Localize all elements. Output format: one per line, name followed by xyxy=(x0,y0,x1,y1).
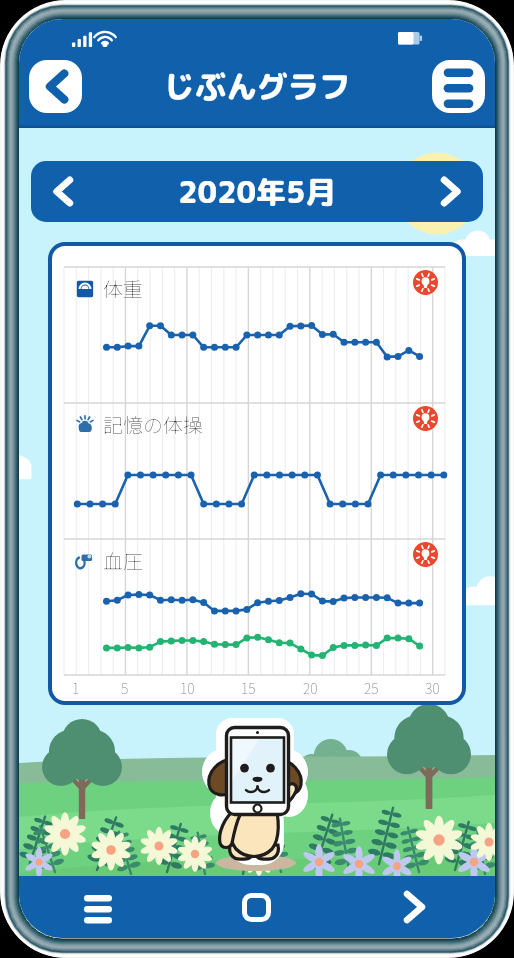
staticText: 15 xyxy=(241,678,256,698)
staticText: 5 xyxy=(121,678,129,698)
staticText: じぶんグラフ xyxy=(164,65,350,108)
button[interactable]: Menu xyxy=(19,876,177,938)
button[interactable]: Tips for 血圧 xyxy=(413,542,438,567)
staticText: 記憶の体操 xyxy=(103,410,203,439)
staticText: 1 xyxy=(72,678,80,698)
staticText: 20 xyxy=(303,678,318,698)
button[interactable]: Forward xyxy=(336,876,495,938)
staticText: 30 xyxy=(425,678,440,698)
button[interactable]: Back xyxy=(29,60,82,113)
button[interactable]: Home xyxy=(177,876,336,938)
button[interactable]: Menu xyxy=(432,60,485,113)
staticText: 2020年5月 xyxy=(178,171,336,213)
staticText: 25 xyxy=(364,678,379,698)
button[interactable]: Next month xyxy=(421,161,483,222)
staticText: 体重 xyxy=(103,274,143,303)
staticText: 血圧 xyxy=(103,546,143,575)
staticText: 10 xyxy=(180,678,195,698)
button[interactable]: Tips for 記憶の体操 xyxy=(413,406,438,431)
button[interactable]: Tips for 体重 xyxy=(413,270,438,295)
button[interactable]: Previous month xyxy=(31,161,93,222)
